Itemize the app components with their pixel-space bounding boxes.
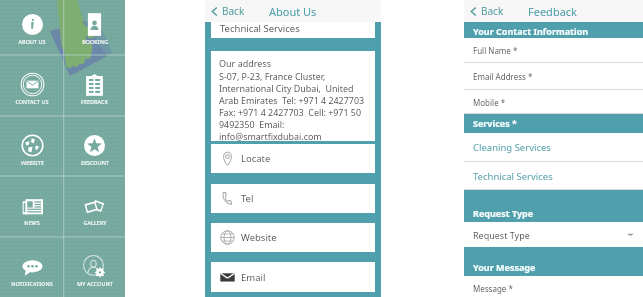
staticText: ABOUT US (18, 38, 46, 45)
button[interactable]: ABOUT US (0, 0, 64, 56)
staticText: Cleaning Services (473, 141, 551, 154)
staticText: Feedback (528, 4, 577, 19)
staticText: Technical Services (220, 22, 300, 35)
staticText: Back (481, 4, 504, 18)
button[interactable]: Website (211, 223, 375, 252)
staticText: Your Contact Information (473, 25, 589, 37)
staticText: Message * (473, 283, 513, 294)
button[interactable]: Our address (211, 51, 375, 141)
staticText: S-07, P-23, France Cluster, Internationa… (219, 70, 372, 141)
button[interactable]: Message * (464, 276, 643, 297)
button[interactable]: Request Type (464, 222, 643, 247)
button[interactable]: Full Name * (464, 38, 643, 63)
button[interactable]: NOTIFICATIONS (0, 237, 64, 297)
staticText: Email (241, 271, 266, 284)
staticText: Request Type (473, 229, 530, 241)
staticText: Email Address * (473, 71, 533, 82)
button[interactable]: Back (469, 4, 504, 18)
button[interactable]: NEWS (0, 176, 64, 237)
staticText: NEWS (24, 219, 40, 226)
staticText: Tel (241, 192, 254, 205)
button[interactable]: Services * (464, 114, 643, 132)
button[interactable]: Email (211, 262, 375, 292)
staticText: NOTIFICATIONS (11, 280, 53, 287)
button[interactable]: Cleaning Services (464, 133, 643, 162)
staticText: GALLERY (83, 219, 107, 226)
staticText: Technical Services (473, 170, 553, 183)
staticText: Back (222, 4, 245, 18)
staticText: Our address (219, 57, 272, 69)
staticText: Services * (473, 117, 517, 129)
button[interactable]: Request Type (464, 194, 643, 222)
staticText: BOOKING (82, 38, 108, 45)
staticText: FEEDBACK (81, 98, 108, 105)
button[interactable]: GALLERY (64, 176, 125, 237)
staticText: Request Type (473, 207, 534, 219)
staticText: Your Message (473, 261, 536, 273)
staticText: Locate (241, 152, 271, 165)
staticText: DISCOUNT (81, 159, 109, 166)
staticText: WEBSITE (21, 159, 44, 166)
button[interactable]: Technical Services (211, 22, 375, 38)
button[interactable]: DISCOUNT (64, 116, 125, 177)
button[interactable]: Locate (211, 144, 375, 173)
button[interactable]: BOOKING (64, 0, 125, 56)
button[interactable]: MY ACCOUNT (64, 237, 125, 297)
staticText: About Us (269, 4, 317, 19)
button[interactable]: FEEDBACK (64, 55, 125, 116)
button[interactable]: Back (210, 4, 245, 18)
staticText: CONTACT US (15, 98, 49, 105)
button[interactable]: Email Address * (464, 63, 643, 90)
staticText: MY ACCOUNT (77, 280, 113, 287)
button[interactable]: Your Contact Information (464, 22, 643, 39)
staticText: Website (241, 231, 277, 244)
button[interactable]: WEBSITE (0, 116, 64, 177)
button[interactable]: Technical Services (464, 162, 643, 190)
staticText: Mobile * (473, 97, 506, 108)
staticText: Full Name * (473, 45, 518, 56)
button[interactable]: Mobile * (464, 90, 643, 114)
button[interactable]: Tel (211, 184, 375, 213)
button[interactable]: CONTACT US (0, 55, 64, 116)
other: Open request type list (627, 231, 634, 238)
button[interactable]: Your Message (464, 247, 643, 276)
